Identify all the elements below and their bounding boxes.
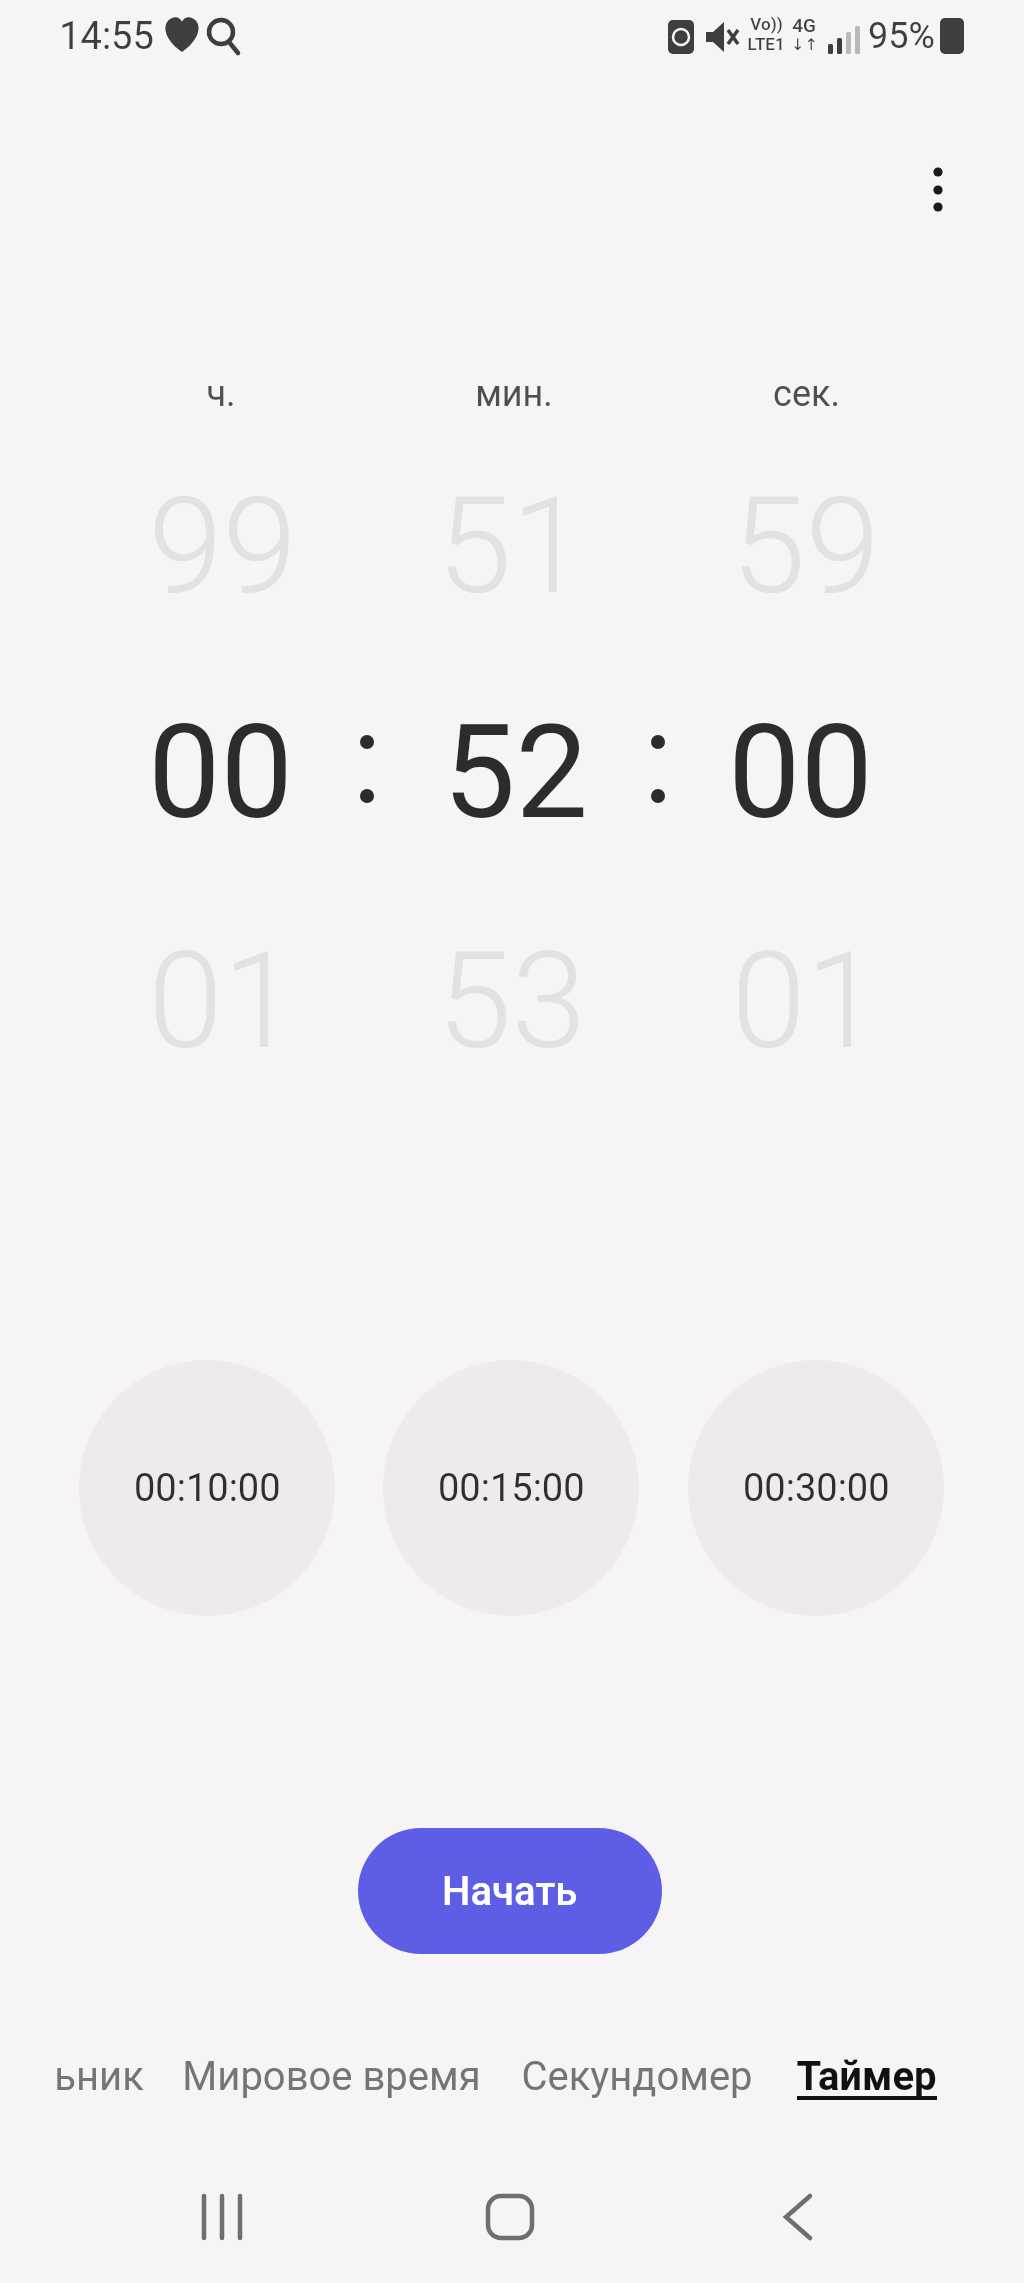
staticText: 51 (437, 468, 586, 625)
staticText: мин. (475, 373, 553, 415)
staticText: 95% (868, 15, 935, 57)
button[interactable] (752, 2192, 840, 2242)
staticText: ьник (54, 2053, 144, 2100)
button[interactable]: 00:10:00 (79, 1360, 335, 1616)
button[interactable]: 00:15:00 (383, 1360, 639, 1616)
button[interactable]: Начать (358, 1828, 662, 1954)
staticText: ч. (206, 373, 236, 415)
staticText: LTE1 (747, 34, 785, 54)
button[interactable] (466, 2192, 554, 2242)
staticText: 4G (792, 14, 816, 34)
button[interactable] (910, 148, 966, 230)
staticText: 14:55 (59, 14, 154, 58)
staticText: 52 (443, 697, 588, 848)
staticText: Секундомер (521, 2053, 753, 2100)
staticText: Vo)) (750, 14, 783, 34)
staticText: Таймер (796, 2053, 937, 2100)
button[interactable]: Мировое время (166, 2048, 496, 2104)
staticText: 01 (731, 923, 880, 1080)
staticText: 00:15:00 (438, 1466, 585, 1511)
button[interactable] (180, 2192, 268, 2242)
staticText: 00 (728, 697, 873, 848)
staticText: Начать (442, 1868, 578, 1915)
button[interactable]: Таймер (781, 2048, 951, 2104)
button[interactable]: Секундомер (507, 2048, 767, 2104)
staticText: 00:30:00 (743, 1466, 890, 1511)
staticText: 00 (148, 697, 293, 848)
staticText: 00:10:00 (134, 1466, 281, 1511)
staticText: сек. (773, 373, 840, 415)
staticText: 99 (148, 468, 297, 625)
staticText: 01 (148, 923, 297, 1080)
staticText: 59 (731, 468, 880, 625)
staticText: ↓↑ (791, 35, 818, 54)
button[interactable]: ьник (14, 2048, 184, 2104)
button[interactable]: 00:30:00 (688, 1360, 944, 1616)
staticText: Мировое время (182, 2053, 481, 2100)
staticText: 53 (437, 923, 586, 1080)
